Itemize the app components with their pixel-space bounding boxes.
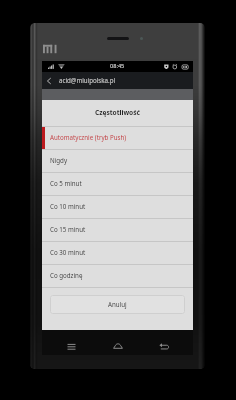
- staticText: Co 10 minut: [50, 202, 86, 210]
- button[interactable]: Menu: [61, 336, 81, 356]
- staticText: Częstotliwość: [95, 108, 140, 117]
- button[interactable]: Home: [108, 336, 128, 356]
- button[interactable]: Nigdy: [42, 150, 193, 172]
- staticText: Co 30 minut: [50, 248, 86, 256]
- button[interactable]: Automatycznie (tryb Push): [42, 127, 193, 149]
- button[interactable]: Co 15 minut: [42, 219, 193, 241]
- staticText: Automatycznie (tryb Push): [50, 133, 127, 141]
- button[interactable]: Back: [42, 72, 56, 89]
- staticText: Nigdy: [50, 156, 68, 164]
- staticText: 08:45: [110, 62, 125, 70]
- staticText: acid@miuipolska.pl: [59, 76, 116, 84]
- button[interactable]: Anuluj: [50, 295, 185, 314]
- button[interactable]: Co godzinę: [42, 265, 193, 287]
- button[interactable]: Co 10 minut: [42, 196, 193, 218]
- staticText: Anuluj: [108, 300, 127, 308]
- staticText: Co 15 minut: [50, 225, 86, 233]
- staticText: Co 5 minut: [50, 179, 82, 187]
- button[interactable]: Co 5 minut: [42, 173, 193, 195]
- button[interactable]: Back: [154, 336, 174, 356]
- button[interactable]: Co 30 minut: [42, 242, 193, 264]
- staticText: Co godzinę: [50, 271, 83, 279]
